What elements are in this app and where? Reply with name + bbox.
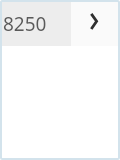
button[interactable]: Next (71, 0, 120, 46)
staticText: 8250 (3, 11, 47, 37)
button[interactable]: 8250 (0, 0, 71, 46)
